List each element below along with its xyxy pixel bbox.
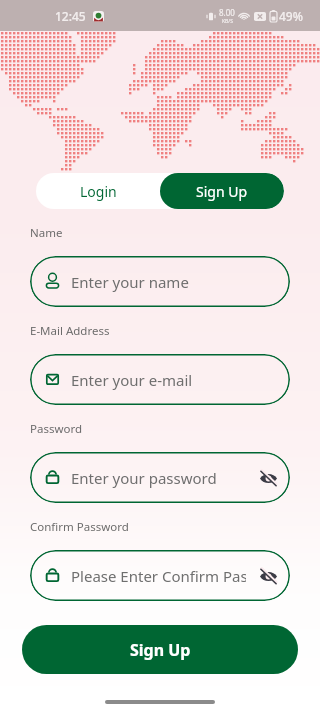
staticText: Please Enter Confirm Pas… [71,566,246,586]
button[interactable]: Please Enter Confirm Pas… [30,550,290,601]
staticText: Name [30,225,63,241]
button[interactable]: Sign Up [22,625,298,674]
staticText: 12:45 [55,8,86,24]
staticText: Sign Up [130,639,191,661]
staticText: Confirm Password [30,519,129,535]
button[interactable]: Enter your password [30,452,290,503]
button[interactable]: Toggle password visibility [254,562,282,590]
staticText: Login [80,182,117,201]
staticText: E-Mail Address [30,323,110,339]
button[interactable]: Toggle password visibility [254,464,282,492]
button[interactable]: Enter your name [30,256,290,307]
staticText: Sign Up [196,182,248,201]
staticText: Enter your password [71,468,217,488]
staticText: Password [30,421,83,437]
staticText: Enter your e-mail [71,370,193,390]
staticText: 8.00 [219,7,235,18]
button[interactable]: Login [36,173,160,209]
staticText: KB/S [222,18,233,25]
button[interactable]: Sign Up [160,173,284,209]
button[interactable]: Enter your e-mail [30,354,290,405]
staticText: 49% [279,8,303,24]
staticText: Enter your name [71,272,189,292]
